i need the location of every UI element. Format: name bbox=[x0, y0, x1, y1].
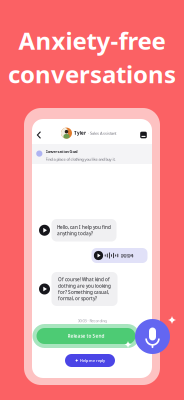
staticText: Find a place of clothing you like and bu… bbox=[45, 156, 115, 162]
staticText: Release to Send bbox=[67, 333, 104, 339]
staticText: 00:03 · Recording bbox=[77, 318, 106, 323]
staticText: · Sales Assistant bbox=[88, 130, 116, 136]
staticText: Anxiety-free bbox=[18, 24, 165, 57]
button[interactable]: Release to Send bbox=[36, 328, 135, 344]
staticText: Of course! What kind of clothing are you… bbox=[58, 276, 111, 302]
staticText: Conversation Goal bbox=[45, 149, 77, 154]
button[interactable]: Notes bbox=[137, 128, 150, 141]
button[interactable]: Back bbox=[32, 128, 45, 141]
staticText: conversations bbox=[8, 58, 176, 90]
button[interactable]: Help me reply bbox=[65, 354, 115, 367]
staticText: Hello, can I help you find anything toda… bbox=[57, 224, 111, 237]
staticText: 00:04 bbox=[120, 252, 133, 259]
staticText: Help me reply bbox=[80, 358, 105, 363]
staticText: Tyler bbox=[74, 130, 86, 136]
button[interactable]: Hold to record voice message bbox=[135, 319, 170, 354]
